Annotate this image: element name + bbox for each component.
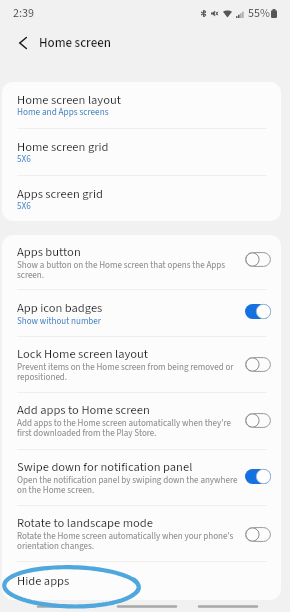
- staticText: Open the notification panel by swiping d…: [17, 474, 240, 497]
- button[interactable]: Hide apps: [2, 562, 281, 600]
- button[interactable]: Home screen layout: [2, 82, 281, 128]
- staticText: Add apps to the Home screen automaticall…: [17, 417, 240, 440]
- staticText: 5X6: [17, 200, 31, 213]
- staticText: Home screen layout: [17, 91, 121, 109]
- staticText: Rotate the Home screen automatically whe…: [17, 530, 240, 553]
- button[interactable]: Navigate up: [4, 26, 41, 60]
- staticText: Home screen grid: [17, 138, 109, 156]
- staticText: Home screen: [39, 34, 111, 53]
- button[interactable]: Rotate to landscape mode: [2, 506, 281, 561]
- button[interactable]: Switch on: [245, 469, 271, 484]
- button[interactable]: Home screen grid: [2, 129, 281, 175]
- staticText: Apps screen grid: [17, 185, 103, 203]
- button[interactable]: Swipe down for notification panel: [2, 450, 281, 505]
- staticText: Swipe down for notification panel: [17, 458, 193, 476]
- staticText: Add apps to Home screen: [17, 401, 150, 419]
- button[interactable]: Switch on: [245, 304, 271, 319]
- button[interactable]: Switch off: [245, 413, 271, 428]
- staticText: Home and Apps screens: [17, 106, 109, 119]
- staticText: Lock Home screen layout: [17, 345, 149, 363]
- staticText: Apps button: [17, 243, 81, 261]
- button[interactable]: Switch off: [245, 252, 271, 267]
- button[interactable]: Switch off: [245, 357, 271, 372]
- staticText: Rotate to landscape mode: [17, 514, 154, 532]
- staticText: 2:39: [13, 5, 34, 22]
- staticText: Show a button on the Home screen that op…: [17, 259, 240, 282]
- button[interactable]: Lock Home screen layout: [2, 337, 281, 392]
- staticText: Prevent items on the Home screen from be…: [17, 361, 240, 384]
- button[interactable]: Add apps to Home screen: [2, 393, 281, 449]
- staticText: 55%: [248, 5, 270, 22]
- button[interactable]: Apps screen grid: [2, 176, 281, 221]
- button[interactable]: App icon badges: [2, 290, 281, 336]
- staticText: App icon badges: [17, 299, 103, 317]
- staticText: Hide apps: [17, 572, 70, 590]
- button[interactable]: Apps button: [2, 235, 281, 289]
- staticText: 5X6: [17, 153, 31, 166]
- staticText: Show without number: [17, 315, 101, 328]
- button[interactable]: Switch off: [245, 527, 271, 542]
